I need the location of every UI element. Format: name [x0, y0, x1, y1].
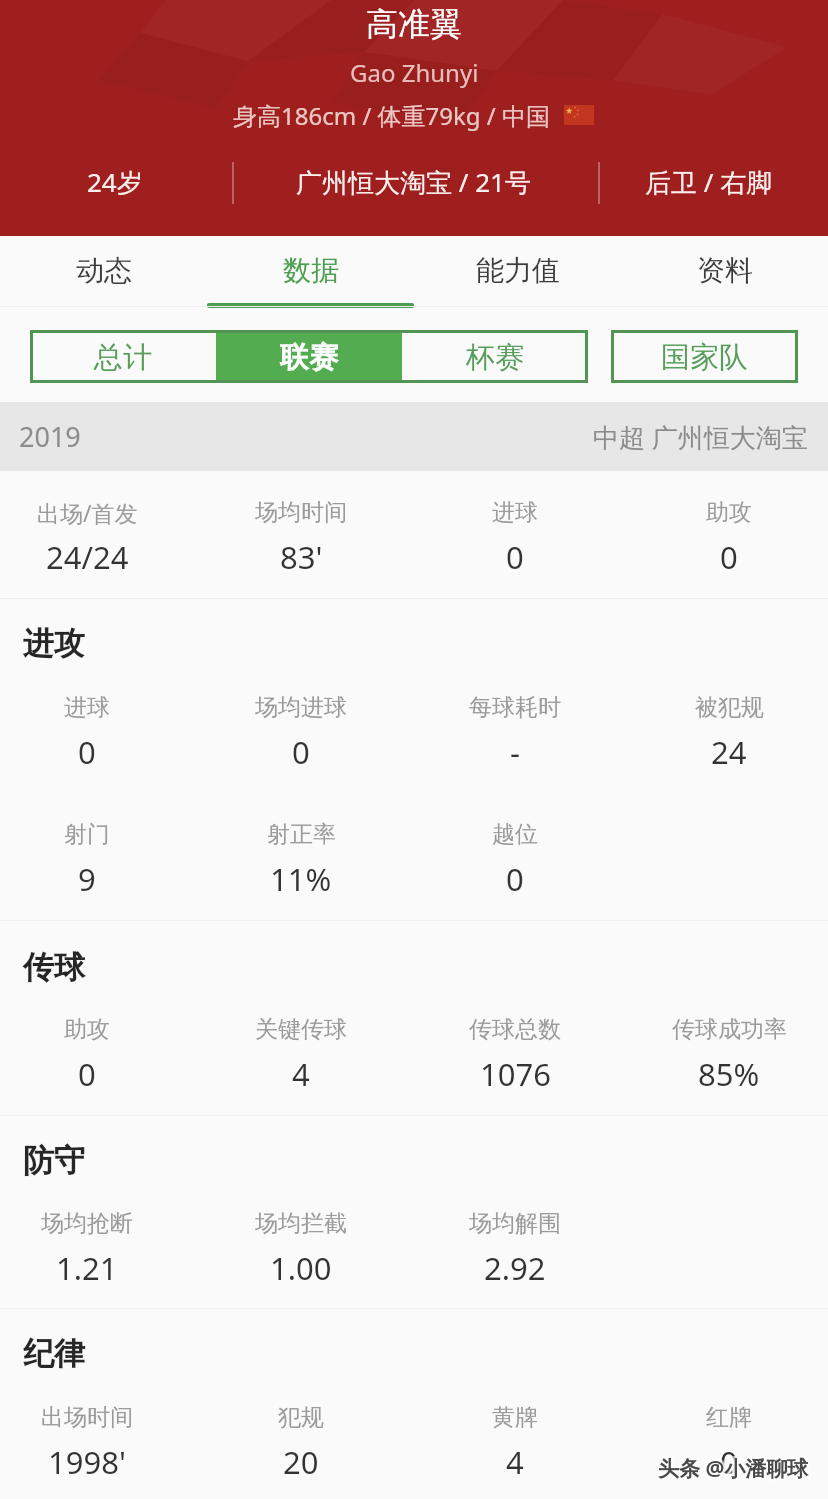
staticText: 1076: [480, 1053, 551, 1095]
staticText: 场均抢断: [41, 1209, 133, 1238]
staticText: 传球: [23, 948, 85, 987]
staticText: 关键传球: [255, 1015, 347, 1044]
staticText: -: [510, 731, 520, 773]
staticText: 防守: [23, 1141, 85, 1180]
staticText: 20: [283, 1441, 319, 1483]
staticText: 2019: [19, 418, 81, 455]
staticText: 头条 @小潘聊球: [658, 1456, 809, 1485]
button[interactable]: 国家队: [611, 330, 798, 383]
staticText: 红牌: [706, 1403, 752, 1432]
staticText: 24: [711, 731, 747, 773]
staticText: 9: [78, 858, 96, 900]
staticText: 后卫 / 右脚: [645, 164, 773, 200]
button[interactable]: 联赛: [216, 330, 402, 383]
staticText: 0: [78, 731, 96, 773]
staticText: 出场/首发: [37, 497, 138, 528]
staticText: 1.00: [270, 1247, 332, 1289]
staticText: 头条 @小潘聊球: [656, 1452, 807, 1481]
staticText: 越位: [492, 820, 538, 849]
staticText: 助攻: [64, 1015, 110, 1044]
staticText: 联赛: [280, 339, 338, 376]
staticText: 进球: [64, 693, 110, 722]
staticText: 头条 @小潘聊球: [660, 1452, 811, 1481]
staticText: 中超 广州恒大淘宝: [593, 419, 808, 455]
staticText: 24岁: [87, 164, 143, 200]
button[interactable]: 总计: [30, 330, 216, 383]
staticText: 广州恒大淘宝 / 21号: [296, 164, 531, 200]
staticText: 动态: [76, 253, 132, 288]
staticText: 射正率: [267, 820, 336, 849]
staticText: 助攻: [706, 498, 752, 527]
staticText: 出场时间: [41, 1403, 133, 1432]
staticText: Gao Zhunyi: [350, 56, 479, 89]
staticText: 传球成功率: [672, 1015, 787, 1044]
staticText: 场均解围: [469, 1209, 561, 1238]
staticText: 头条 @小潘聊球: [658, 1454, 809, 1483]
staticText: 场均进球: [255, 693, 347, 722]
staticText: 24/24: [46, 536, 129, 578]
staticText: 0: [720, 1441, 738, 1483]
staticText: 总计: [94, 339, 152, 376]
staticText: 头条 @小潘聊球: [660, 1454, 811, 1483]
staticText: 黄牌: [492, 1403, 538, 1432]
staticText: 1.21: [56, 1247, 118, 1289]
staticText: 射门: [64, 820, 110, 849]
staticText: 身高186cm / 体重79kg / 中国: [233, 99, 550, 132]
staticText: 85%: [698, 1053, 760, 1095]
staticText: 1998': [48, 1441, 126, 1483]
staticText: 2.92: [484, 1247, 546, 1289]
button[interactable]: 能力值: [414, 236, 621, 307]
staticText: 0: [78, 1053, 96, 1095]
staticText: 0: [506, 536, 524, 578]
staticText: 场均拦截: [255, 1209, 347, 1238]
staticText: 进攻: [23, 624, 85, 663]
staticText: 国家队: [661, 339, 748, 376]
staticText: 头条 @小潘聊球: [658, 1452, 809, 1481]
staticText: 头条 @小潘聊球: [660, 1456, 811, 1485]
staticText: 头条 @小潘聊球: [656, 1454, 807, 1483]
staticText: 4: [506, 1441, 524, 1483]
staticText: 每球耗时: [469, 693, 561, 722]
staticText: 数据: [283, 253, 339, 288]
staticText: 能力值: [476, 253, 560, 288]
staticText: 0: [292, 731, 310, 773]
staticText: 场均时间: [255, 498, 347, 527]
staticText: 0: [720, 536, 738, 578]
staticText: 犯规: [278, 1403, 324, 1432]
staticText: 0: [506, 858, 524, 900]
staticText: 83': [280, 536, 323, 578]
staticText: 纪律: [23, 1334, 85, 1373]
button[interactable]: 资料: [621, 236, 828, 307]
staticText: 被犯规: [695, 693, 764, 722]
button[interactable]: 动态: [0, 236, 207, 307]
staticText: 11%: [270, 858, 332, 900]
staticText: 传球总数: [469, 1015, 561, 1044]
staticText: 杯赛: [466, 339, 524, 376]
staticText: 资料: [697, 253, 753, 288]
button[interactable]: 数据: [207, 236, 414, 307]
staticText: 头条 @小潘聊球: [656, 1456, 807, 1485]
staticText: 进球: [492, 498, 538, 527]
button[interactable]: 杯赛: [402, 330, 588, 383]
staticText: 高准翼: [366, 4, 462, 44]
staticText: 4: [292, 1053, 310, 1095]
